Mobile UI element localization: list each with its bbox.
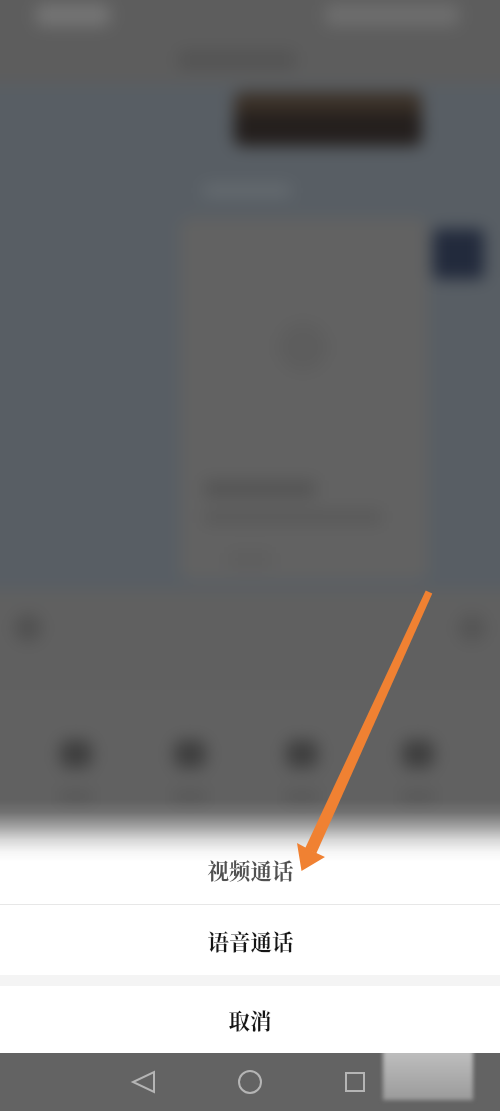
- button[interactable]: Back: [121, 1060, 165, 1104]
- button[interactable]: 取消: [0, 986, 500, 1053]
- button[interactable]: 语音通话: [0, 905, 500, 975]
- button[interactable]: 视频通话: [0, 834, 500, 904]
- button[interactable]: Recents: [333, 1060, 377, 1104]
- staticText: 视频通话: [207, 854, 294, 885]
- button[interactable]: Home: [228, 1060, 272, 1104]
- staticText: 语音通话: [207, 925, 294, 956]
- staticText: 取消: [228, 1004, 272, 1035]
